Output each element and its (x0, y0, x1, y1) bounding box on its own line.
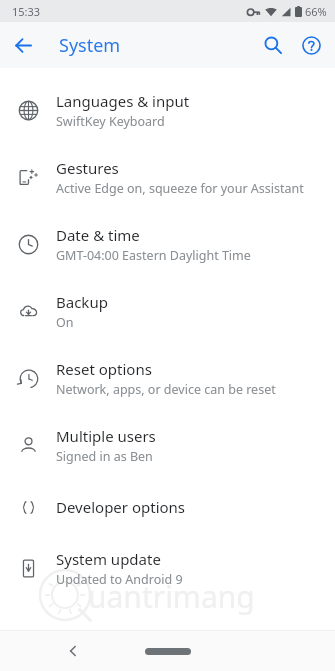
staticText: Signed in as Ben (56, 448, 153, 465)
staticText: Backup (56, 292, 108, 312)
staticText: Gestures (56, 158, 119, 178)
button[interactable]: Multiple users (0, 412, 335, 479)
button[interactable]: Back (5, 27, 41, 63)
staticText: Active Edge on, squeeze for your Assista… (56, 180, 304, 197)
button[interactable]: System update (0, 535, 335, 602)
staticText: Developer options (56, 497, 186, 517)
button[interactable]: Languages & input (0, 77, 335, 144)
staticText: Network, apps, or device can be reset (56, 381, 276, 398)
button[interactable]: Date & time (0, 211, 335, 278)
staticText: Date & time (56, 225, 140, 245)
button[interactable]: Home (141, 641, 195, 661)
staticText: Multiple users (56, 426, 156, 446)
button[interactable]: Search (255, 27, 291, 63)
button[interactable]: Backup (0, 278, 335, 345)
staticText: 66% (305, 4, 327, 19)
staticText: GMT-04:00 Eastern Daylight Time (56, 247, 251, 264)
staticText: Reset options (56, 359, 152, 379)
staticText: System update (56, 549, 161, 569)
button[interactable]: Back (56, 634, 90, 668)
button[interactable]: Reset options (0, 345, 335, 412)
button[interactable]: Gestures (0, 144, 335, 211)
staticText: On (56, 314, 74, 331)
staticText: Updated to Android 9 (56, 571, 183, 588)
staticText: SwiftKey Keyboard (56, 113, 165, 130)
button[interactable]: Help (293, 27, 329, 63)
staticText: 15:33 (12, 4, 41, 19)
staticText: Languages & input (56, 91, 190, 111)
staticText: System (59, 33, 121, 58)
button[interactable]: Developer options (0, 479, 335, 535)
staticText: uantrimang (88, 576, 255, 617)
